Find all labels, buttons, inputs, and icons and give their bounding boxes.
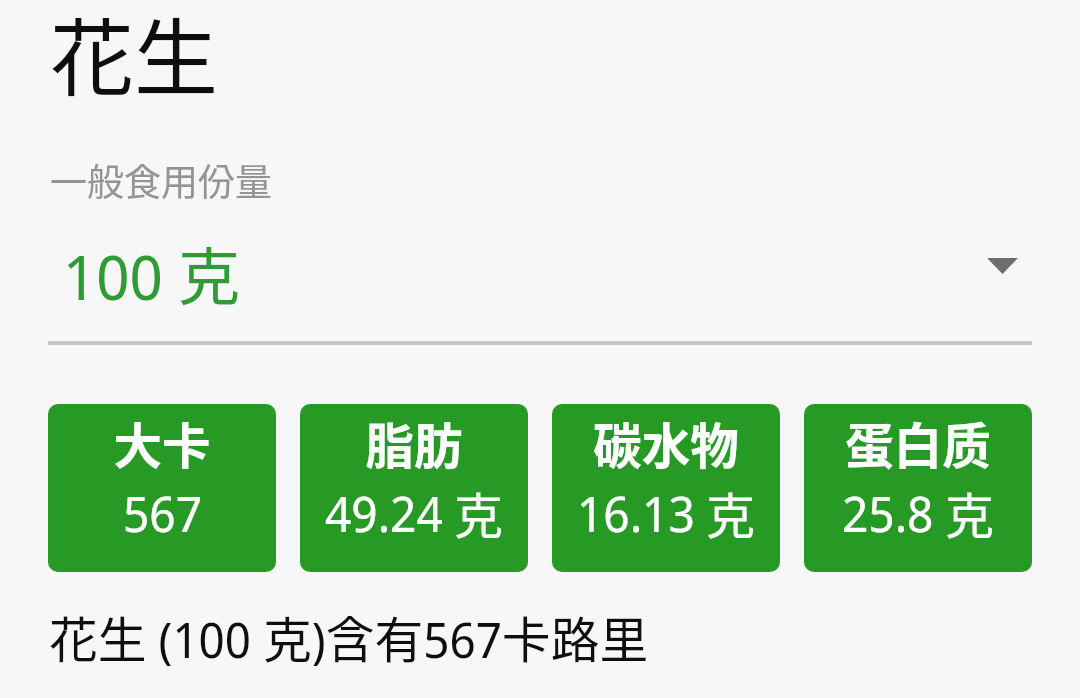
staticText: 567 <box>123 480 202 547</box>
staticText: 脂肪 <box>365 408 463 478</box>
staticText: 克 <box>695 477 755 548</box>
staticText: 克 <box>934 477 994 548</box>
button[interactable]: 100 克 <box>48 228 448 314</box>
staticText: 49.24 <box>325 480 443 547</box>
staticText: 一般食用份量 <box>50 153 272 207</box>
button[interactable]: 蛋白质 <box>804 404 1032 572</box>
staticText: 大卡 <box>113 408 211 478</box>
staticText: 16.13 <box>577 480 695 547</box>
staticText: 100 克 <box>63 228 241 314</box>
staticText: 蛋白质 <box>845 408 991 478</box>
staticText: 克 <box>443 477 503 548</box>
staticText: 花生 <box>50 0 219 114</box>
button[interactable]: 碳水物 <box>552 404 780 572</box>
button[interactable]: Change serving size <box>970 234 1034 298</box>
staticText: 25.8 <box>842 480 934 547</box>
button[interactable]: 大卡 <box>48 404 276 572</box>
staticText: 花生 (100 克)含有567卡路里 <box>49 601 649 672</box>
staticText: 碳水物 <box>593 408 739 478</box>
button[interactable]: 脂肪 <box>300 404 528 572</box>
